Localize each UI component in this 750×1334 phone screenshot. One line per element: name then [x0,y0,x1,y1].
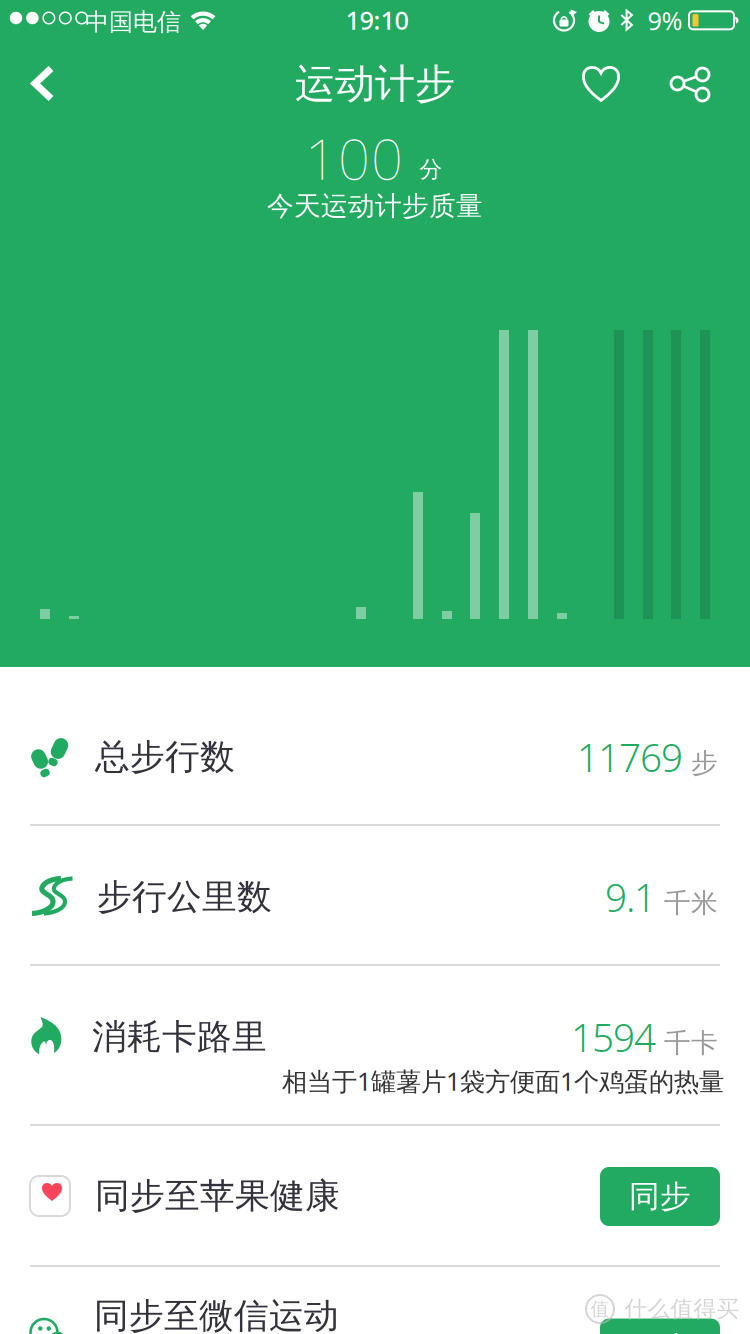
staticText: 步 [691,747,718,779]
staticText: 总步行数 [95,736,235,778]
staticText: 19:10 [345,3,408,37]
staticText: 同步至苹果健康 [95,1175,340,1217]
staticText: 分 [419,156,442,183]
staticText: 100 [305,121,403,195]
button[interactable]: 同步 [600,1167,720,1226]
staticText: 中国电信 [85,7,181,37]
staticText: 11769 [577,731,683,783]
staticText: 同步 [629,1178,691,1215]
button[interactable]: Back [13,55,73,111]
button[interactable]: Share [662,58,718,110]
staticText: 同步 [629,1329,691,1334]
staticText: 相当于1罐薯片1袋方便面1个鸡蛋的热量 [282,1064,724,1098]
staticText: 什么值得买 [624,1295,739,1323]
staticText: 同步至微信运动 [94,1295,339,1334]
staticText: 运动计步 [295,59,455,108]
button[interactable]: 同步 [600,1318,720,1334]
staticText: 1594 [571,1011,656,1063]
staticText: 千米 [664,887,718,919]
staticText: 步行公里数 [97,876,272,918]
button[interactable]: Favorite [573,58,629,110]
staticText: 千卡 [664,1027,718,1059]
staticText: 9% [647,4,682,37]
staticText: 今天运动计步质量 [267,190,483,222]
staticText: 值 [590,1297,609,1320]
staticText: 消耗卡路里 [92,1016,267,1058]
staticText: 9.1 [605,871,656,923]
